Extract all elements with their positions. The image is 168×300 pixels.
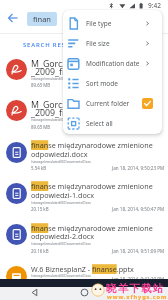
staticText: File type [86,19,112,28]
button[interactable] [0,177,168,218]
staticText: Modification date [86,59,140,68]
staticText: finanse międzynarodowe zmienione [31,181,153,191]
button[interactable] [142,98,153,109]
staticText: finan [33,14,51,24]
button[interactable] [8,13,18,23]
button[interactable] [0,218,168,259]
staticText: 20.15 kB [31,206,49,212]
button[interactable]: finan [27,12,57,26]
staticText: Select all [86,119,113,128]
staticText: File size [86,39,110,48]
button[interactable] [0,53,168,94]
staticText: W.6 BiznesplanZ - finanse.pptx [31,264,134,274]
staticText: M_Gorczynska [31,99,91,111]
staticText: /storage/emulated/0/Documents [31,117,83,121]
button[interactable] [80,288,89,297]
staticText: 20.16 kB [31,248,49,254]
staticText: Current folder [86,99,130,108]
staticText: 89.65 MB [31,82,51,88]
staticText: odpowiedzi-2.docx [31,231,94,241]
button[interactable]: Sort mode [63,73,162,93]
staticText: 晓羊下载站 [106,282,165,295]
button[interactable]: Current folder [63,93,162,113]
staticText: M_Gorczynska [31,58,91,70]
button[interactable] [0,260,168,300]
button[interactable] [30,288,39,297]
staticText: _2009_finanse2.pdf [31,107,111,119]
staticText: 9:42 [148,1,161,10]
staticText: Jan 18, 2014, 9:41:29 PM [112,276,165,282]
staticText: SEARCH RESULTS [23,41,84,49]
staticText: /storage/emulated/0/Documents/Docs [31,273,91,277]
staticText: _2009_finanse.pdf [31,66,106,78]
staticText: www.xfhygs.com [107,293,168,300]
staticText: Jan 18, 2014, 9:50:23 PM [112,165,165,171]
staticText: Jan 18, 2014, 9:51:09 PM [112,248,165,254]
staticText: Sort mode [86,79,118,88]
button[interactable]: Modification date [63,53,162,73]
staticText: odpowiedzi-1.docx [31,190,94,200]
staticText: /storage/emulated/0/Documents/Docs [31,159,91,163]
staticText: odpowiedzi.docx [31,149,88,159]
staticText: /storage/emulated/0/Documents/Docs [31,241,91,245]
staticText: /storage/emulated/0/Documents/Docs [31,200,91,204]
button[interactable]: File type [63,13,162,33]
staticText: 5.54 kB [31,165,47,171]
staticText: /storage/emulated/0/Documents [31,76,83,80]
staticText: finanse międzynarodowe zmienione [31,140,153,150]
button[interactable] [0,136,168,177]
button[interactable]: Select all [63,113,162,133]
button[interactable]: File size [63,33,162,53]
button[interactable] [0,94,168,135]
staticText: finanse międzynarodowe zmienione [31,223,153,233]
staticText: 89.65 MB [31,124,51,130]
staticText: Jan 18, 2014, 9:50:47 PM [112,206,165,212]
